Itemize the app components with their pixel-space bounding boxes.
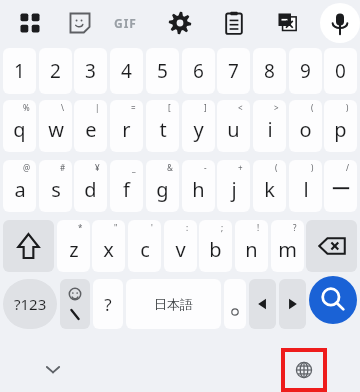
staticText: |	[95, 102, 100, 113]
staticText: ?	[104, 293, 112, 316]
staticText: l	[303, 176, 309, 203]
button[interactable]: %	[3, 100, 36, 152]
staticText: h	[192, 176, 205, 203]
button[interactable]: Change keyboard language	[285, 352, 323, 388]
button[interactable]: ?123	[3, 279, 57, 329]
button[interactable]: 7	[217, 48, 250, 94]
button[interactable]: GIF	[108, 6, 142, 40]
button[interactable]: Hide keyboard	[36, 352, 70, 386]
button[interactable]: [	[146, 100, 179, 152]
button[interactable]: 5	[146, 48, 179, 94]
staticText: k	[264, 176, 275, 203]
button[interactable]: /	[324, 160, 357, 212]
staticText: 6	[193, 58, 204, 84]
button[interactable]: &	[146, 160, 179, 212]
button[interactable]: 9	[289, 48, 322, 94]
button[interactable]: 0	[324, 48, 357, 94]
button[interactable]: )	[289, 160, 322, 212]
staticText: !	[257, 222, 260, 233]
staticText: 4	[121, 58, 132, 84]
staticText: =	[131, 102, 136, 113]
staticText: p	[334, 116, 347, 143]
button[interactable]: Clipboard	[217, 6, 251, 40]
button[interactable]: 2	[39, 48, 72, 94]
button[interactable]: Cursor left	[249, 279, 276, 329]
button[interactable]: \	[39, 100, 72, 152]
staticText: (	[275, 162, 278, 173]
staticText: v	[175, 236, 186, 263]
button[interactable]: 日本語	[126, 279, 221, 329]
staticText: ;	[221, 222, 224, 233]
staticText: ー	[331, 177, 351, 202]
button[interactable]: )	[324, 100, 357, 152]
button[interactable]: :	[164, 220, 197, 272]
button[interactable]: @	[3, 160, 36, 212]
button[interactable]: |	[74, 100, 107, 152]
button[interactable]: Stickers	[63, 6, 97, 40]
button[interactable]: Translate	[271, 6, 305, 40]
button[interactable]: _	[110, 160, 143, 212]
staticText: b	[209, 236, 222, 263]
button[interactable]: 6	[182, 48, 215, 94]
button[interactable]: (	[253, 160, 286, 212]
button[interactable]: #	[39, 160, 72, 212]
staticText: 7	[228, 58, 239, 84]
button[interactable]: 1	[3, 48, 36, 94]
staticText: x	[103, 236, 114, 263]
staticText: 2	[50, 58, 61, 84]
staticText: -	[204, 162, 207, 173]
staticText: ?123	[14, 294, 47, 314]
button[interactable]: >	[253, 100, 286, 152]
button[interactable]: =	[110, 100, 143, 152]
staticText: +	[238, 162, 243, 173]
staticText: q	[13, 116, 26, 143]
staticText: "	[114, 222, 118, 233]
staticText: o	[299, 116, 312, 143]
button[interactable]: ?	[271, 220, 304, 272]
staticText: \	[61, 102, 64, 113]
button[interactable]: <	[217, 100, 250, 152]
button[interactable]: 3	[74, 48, 107, 94]
staticText: @	[23, 162, 31, 173]
button[interactable]: Delete	[306, 220, 357, 272]
staticText: &	[167, 162, 173, 173]
button[interactable]: Maru	[224, 279, 246, 329]
staticText: 5	[157, 58, 168, 84]
button[interactable]: Shift	[3, 220, 54, 272]
button[interactable]: (	[289, 100, 322, 152]
staticText: 8	[264, 58, 275, 84]
staticText: ]	[204, 102, 207, 113]
button[interactable]: ;	[199, 220, 232, 272]
button[interactable]: +	[217, 160, 250, 212]
button[interactable]: Settings	[163, 6, 197, 40]
button[interactable]: ?	[93, 279, 123, 329]
staticText: 9	[300, 58, 311, 84]
staticText: f	[123, 176, 130, 203]
button[interactable]: ]	[182, 100, 215, 152]
button[interactable]: ¥	[74, 160, 107, 212]
staticText: r	[122, 116, 131, 143]
staticText: y	[193, 116, 204, 143]
button[interactable]: Voice input	[320, 3, 360, 43]
button[interactable]: Emoji	[60, 279, 90, 329]
staticText: j	[231, 176, 237, 203]
button[interactable]: 8	[253, 48, 286, 94]
button[interactable]: -	[182, 160, 215, 212]
staticText: ?	[293, 222, 297, 233]
button[interactable]: Search	[309, 276, 357, 324]
staticText: ¥	[95, 162, 100, 173]
staticText: n	[245, 236, 258, 263]
staticText: t	[159, 116, 167, 143]
button[interactable]: Apps	[13, 6, 47, 40]
staticText: 3	[85, 58, 96, 84]
button[interactable]: *	[57, 220, 90, 272]
staticText: g	[156, 176, 169, 203]
button[interactable]: !	[235, 220, 268, 272]
button[interactable]: "	[92, 220, 125, 272]
button[interactable]: 4	[110, 48, 143, 94]
button[interactable]: Cursor right	[279, 279, 306, 329]
staticText: 日本語	[154, 296, 193, 312]
button[interactable]: '	[128, 220, 161, 272]
staticText: c	[140, 236, 150, 263]
staticText: )	[311, 162, 314, 173]
